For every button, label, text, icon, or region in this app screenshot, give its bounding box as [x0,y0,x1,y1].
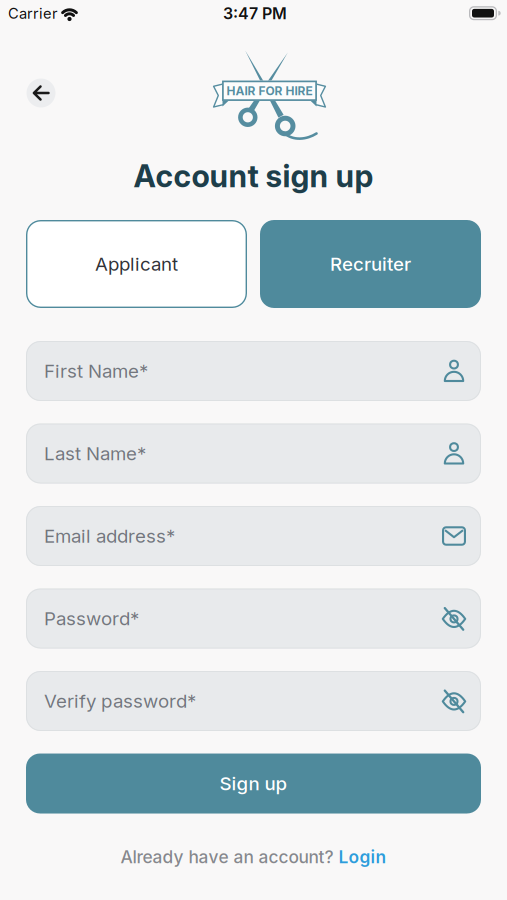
staticText: Account sign up [133,158,373,194]
button[interactable]: Email address [442,524,466,548]
button[interactable]: Last name [442,441,466,465]
button[interactable]: Show password [442,689,466,713]
staticText: Email address* [44,525,175,547]
button[interactable]: Applicant [26,220,247,308]
staticText: Password* [44,607,139,629]
staticText: HAIR FOR HIRE [226,84,312,98]
button[interactable]: Recruiter [260,220,481,308]
button[interactable]: Login [338,847,386,867]
staticText: Carrier [8,5,58,22]
staticText: Recruiter [330,253,411,275]
button[interactable]: First name [442,359,466,383]
button[interactable]: Last Name* [26,423,481,483]
button[interactable]: Password* [26,588,481,648]
staticText: 3:47 PM [223,4,287,23]
button[interactable]: Verify password* [26,671,481,731]
staticText: Applicant [95,253,178,275]
staticText: Last Name* [44,442,146,464]
button[interactable]: Email address* [26,506,481,566]
button[interactable]: Sign up [26,753,481,813]
staticText: Verify password* [44,690,196,712]
button[interactable]: Show password [442,606,466,630]
button[interactable]: Back [26,78,55,107]
button[interactable]: First Name* [26,341,481,401]
staticText: Login [338,847,386,867]
staticText: First Name* [44,360,148,382]
staticText: Already have an account? [120,847,333,867]
staticText: Sign up [219,772,287,794]
